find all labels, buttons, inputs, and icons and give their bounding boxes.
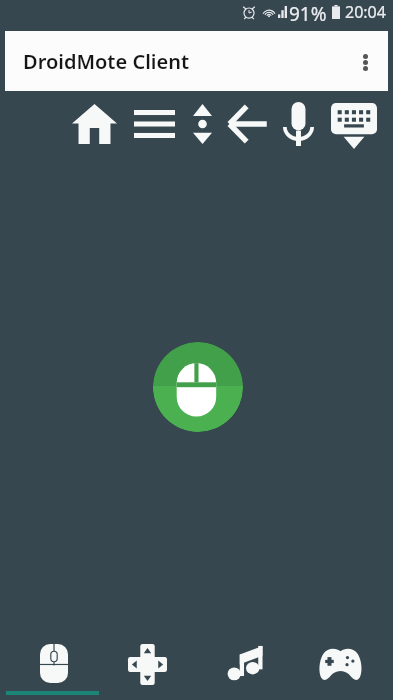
button[interactable]: Mouse pad [153, 342, 243, 432]
staticText: 20:04 [345, 1, 386, 23]
button[interactable]: Back [227, 104, 268, 144]
button[interactable]: Voice search [283, 102, 314, 146]
button[interactable]: Home [72, 104, 117, 144]
button[interactable]: Scroll up and down [193, 104, 212, 144]
button[interactable]: Menu [134, 110, 175, 138]
button[interactable]: Keyboard [331, 103, 377, 149]
button[interactable]: More options [340, 31, 388, 90]
button[interactable]: Music [197, 636, 295, 700]
button[interactable]: D-pad [98, 636, 196, 700]
button[interactable]: Mouse [0, 636, 98, 700]
staticText: 91% [289, 1, 327, 27]
staticText: DroidMote Client [23, 48, 190, 75]
button[interactable]: Touchpad area [0, 152, 393, 636]
button[interactable]: Gamepad [295, 636, 393, 700]
